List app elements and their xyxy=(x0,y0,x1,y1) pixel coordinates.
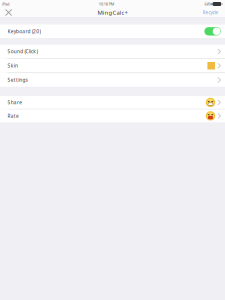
button[interactable]: Keyboard (20) xyxy=(0,24,225,38)
button[interactable]: Close xyxy=(0,8,16,17)
button[interactable]: Rate xyxy=(0,109,225,122)
button[interactable]: Sound (Click) xyxy=(0,45,225,58)
staticText: Recycle xyxy=(202,9,218,16)
staticText: Skin xyxy=(7,62,18,69)
staticText: 64% xyxy=(204,1,211,7)
staticText: Share xyxy=(7,99,22,106)
staticText: Sound (Click) xyxy=(7,48,37,55)
button[interactable]: Skin xyxy=(0,59,225,73)
staticText: 10:18 PM xyxy=(99,1,115,7)
staticText: Rate xyxy=(7,113,19,119)
staticText: Settings xyxy=(7,77,27,83)
staticText: iPad xyxy=(2,1,9,7)
button[interactable]: Share xyxy=(0,96,225,109)
staticText: MingCalc+ xyxy=(97,8,127,16)
button[interactable]: Settings xyxy=(0,73,225,87)
button[interactable]: Recycle xyxy=(198,8,225,17)
staticText: Keyboard (20) xyxy=(7,28,40,34)
